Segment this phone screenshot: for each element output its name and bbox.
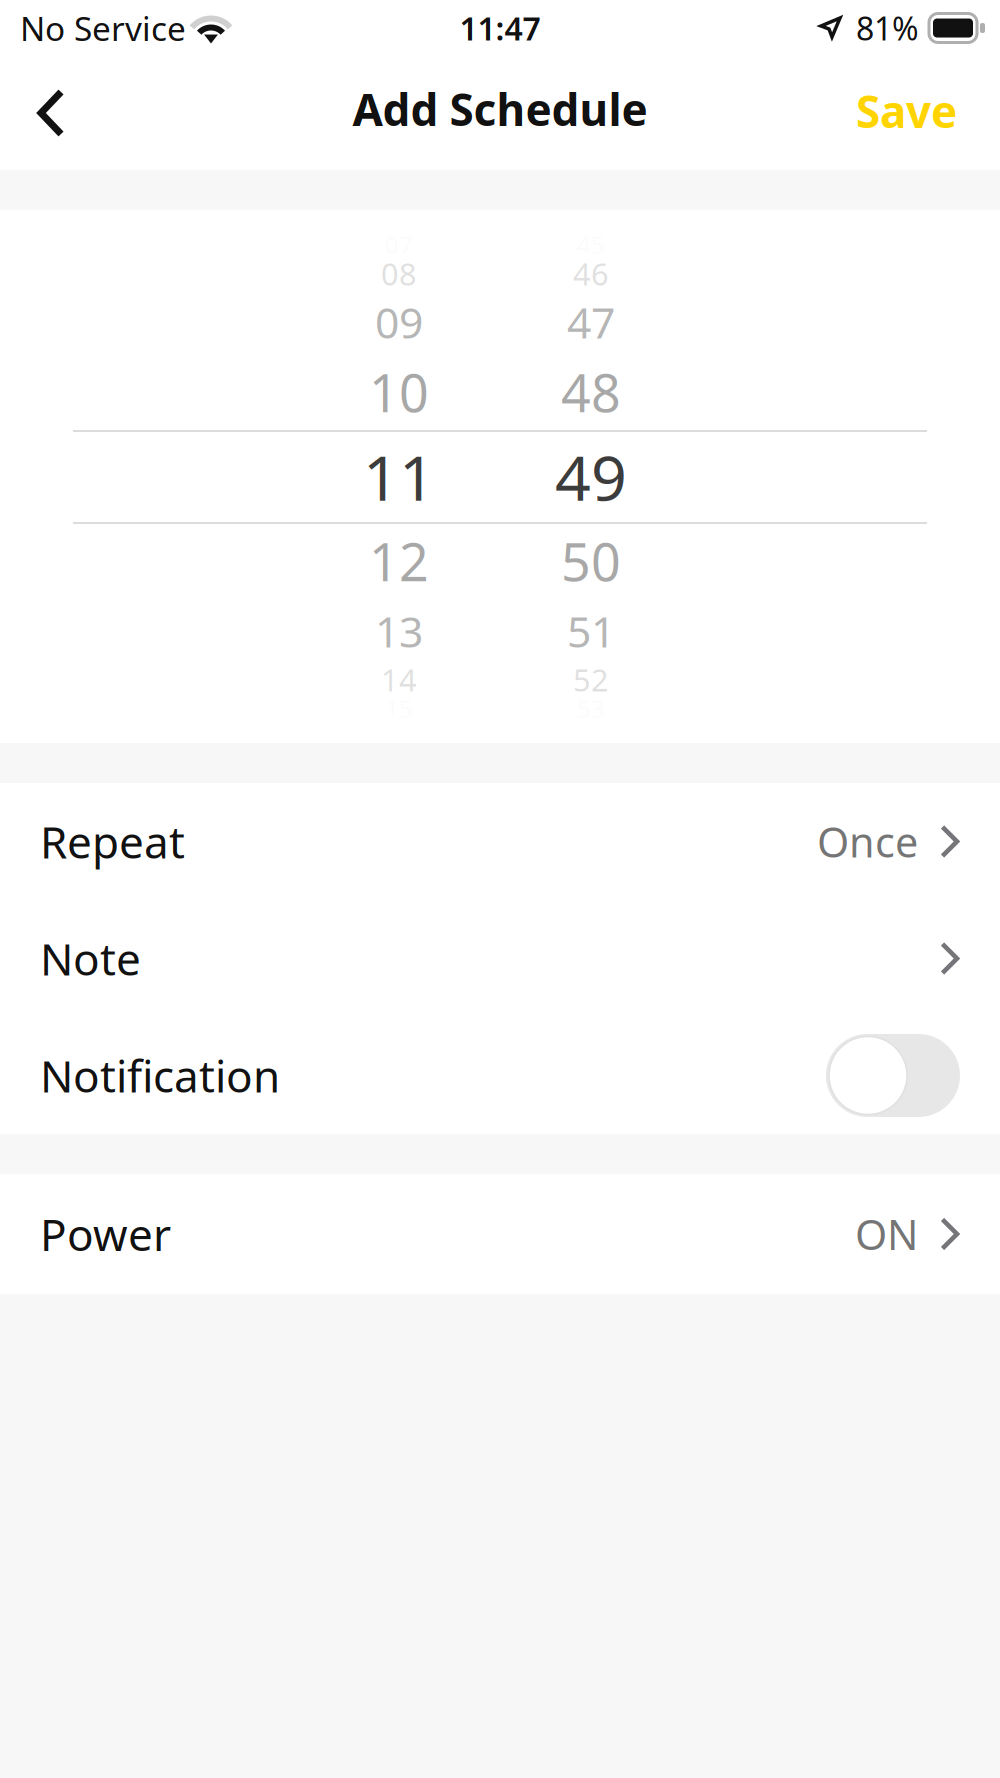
staticText: 50 — [561, 526, 621, 596]
staticText: Repeat — [40, 812, 185, 871]
staticText: 49 — [555, 435, 627, 518]
staticText: 47 — [567, 294, 615, 350]
staticText: Note — [40, 929, 141, 988]
button[interactable]: Notification — [826, 1034, 960, 1117]
button[interactable]: Repeat — [0, 783, 1000, 900]
staticText: 08 — [381, 253, 417, 294]
staticText: 13 — [375, 603, 423, 659]
button[interactable]: Minute — [531, 210, 651, 743]
staticText: Notification — [40, 1046, 280, 1105]
button[interactable]: Save — [813, 56, 1000, 170]
staticText: 46 — [573, 253, 609, 294]
staticText: 14 — [381, 659, 417, 700]
staticText: 81% — [856, 7, 919, 49]
staticText: 10 — [369, 357, 429, 427]
staticText: No Service — [20, 6, 186, 50]
staticText: 11 — [363, 435, 435, 518]
staticText: Add Schedule — [352, 80, 647, 138]
staticText: 48 — [561, 357, 621, 427]
button[interactable]: Power — [0, 1174, 1000, 1294]
staticText: Once — [817, 814, 918, 869]
staticText: 51 — [567, 603, 615, 659]
staticText: 09 — [375, 294, 423, 350]
button[interactable]: Hour — [339, 210, 459, 743]
staticText: Save — [856, 82, 957, 140]
staticText: 12 — [369, 526, 429, 596]
staticText: 52 — [573, 659, 609, 700]
staticText: 11:47 — [459, 7, 540, 49]
staticText: Power — [40, 1205, 171, 1263]
staticText: ON — [855, 1207, 918, 1261]
button[interactable]: Back — [0, 56, 95, 170]
button[interactable]: Note — [0, 900, 1000, 1017]
